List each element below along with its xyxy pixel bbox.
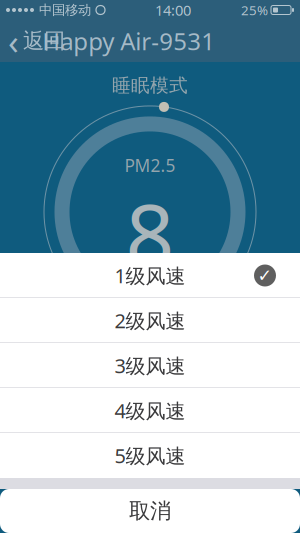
staticText: ‹ [8,18,19,64]
staticText: 25% [241,1,268,19]
staticText: 睡眠模式 [112,74,188,97]
staticText: 返回 [23,28,65,54]
staticText: 取消 [129,498,171,524]
staticText: PM2.5 [124,154,175,177]
button[interactable]: 1级风速 [0,253,300,298]
button[interactable]: 取消 [0,489,300,533]
staticText: 5级风速 [114,442,185,469]
button[interactable]: 4级风速 [0,388,300,433]
button[interactable]: 5级风速 [0,433,300,478]
staticText: ✓ [257,266,272,285]
staticText: 4级风速 [114,397,185,424]
staticText: 中国移动 [39,2,91,18]
staticText: 1级风速 [114,262,185,289]
button[interactable]: 3级风速 [0,343,300,388]
staticText: 2级风速 [114,307,185,334]
staticText: 14:00 [155,0,191,20]
button[interactable]: ‹ [0,12,73,70]
staticText: Happy Air-9531 [42,25,215,57]
button[interactable]: 2级风速 [0,298,300,343]
staticText: 8 [125,177,174,290]
staticText: 3级风速 [114,352,185,379]
